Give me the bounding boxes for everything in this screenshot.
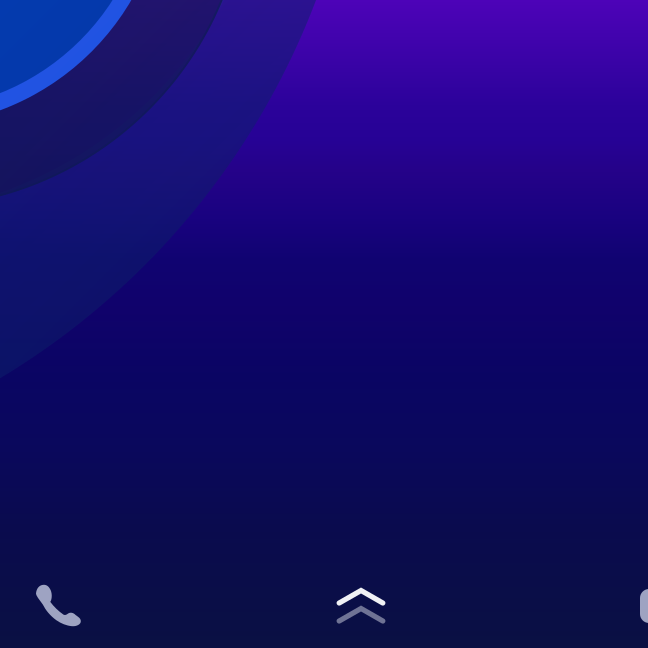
button[interactable]: Unlock xyxy=(333,585,389,629)
button[interactable]: Camera xyxy=(622,574,648,644)
button[interactable]: Phone xyxy=(25,573,95,643)
